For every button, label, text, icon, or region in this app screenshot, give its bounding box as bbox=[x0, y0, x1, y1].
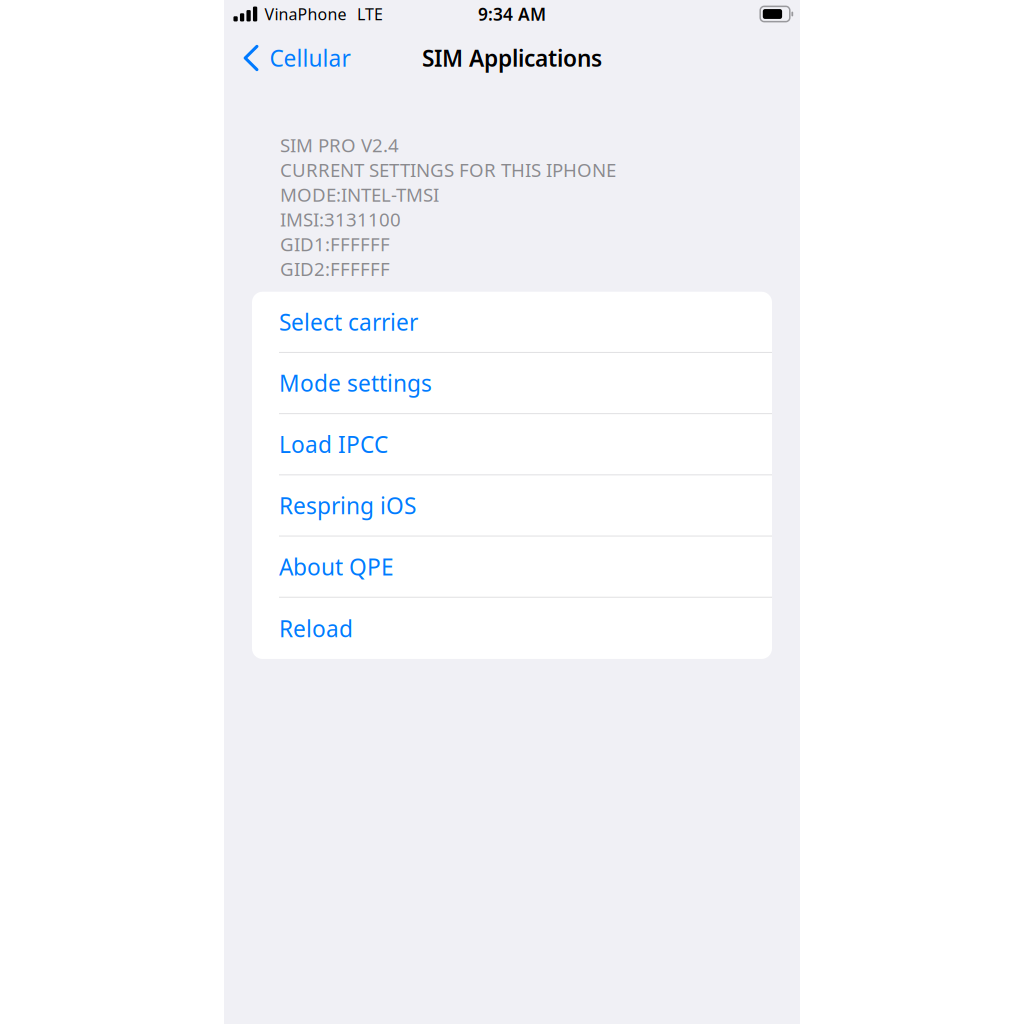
staticText: About QPE bbox=[279, 552, 394, 582]
staticText: Mode settings bbox=[279, 368, 432, 398]
staticText: CURRENT SETTINGS FOR THIS IPHONE bbox=[280, 157, 616, 182]
button[interactable]: Load IPCC bbox=[252, 414, 772, 475]
staticText: Cellular bbox=[269, 43, 350, 73]
button[interactable]: Mode settings bbox=[252, 353, 772, 414]
staticText: MODE:INTEL-TMSI bbox=[280, 182, 439, 207]
staticText: Load IPCC bbox=[279, 429, 388, 459]
button[interactable]: About QPE bbox=[252, 536, 772, 598]
staticText: 9:34 AM bbox=[478, 2, 546, 25]
button[interactable]: Reload bbox=[252, 598, 772, 659]
button[interactable]: Back to Cellular bbox=[224, 36, 362, 80]
staticText: IMSI:3131100 bbox=[280, 207, 401, 232]
staticText: Respring iOS bbox=[279, 490, 416, 520]
button[interactable]: Respring iOS bbox=[252, 475, 772, 536]
staticText: LTE bbox=[357, 3, 383, 25]
staticText: Select carrier bbox=[279, 307, 418, 337]
staticText: SIM PRO V2.4 bbox=[280, 132, 399, 157]
staticText: GID2:FFFFFF bbox=[280, 256, 390, 281]
staticText: Reload bbox=[279, 613, 353, 643]
staticText: SIM Applications bbox=[422, 43, 602, 73]
button[interactable]: Select carrier bbox=[252, 292, 772, 353]
staticText: GID1:FFFFFF bbox=[280, 232, 390, 256]
staticText: VinaPhone bbox=[264, 3, 346, 25]
